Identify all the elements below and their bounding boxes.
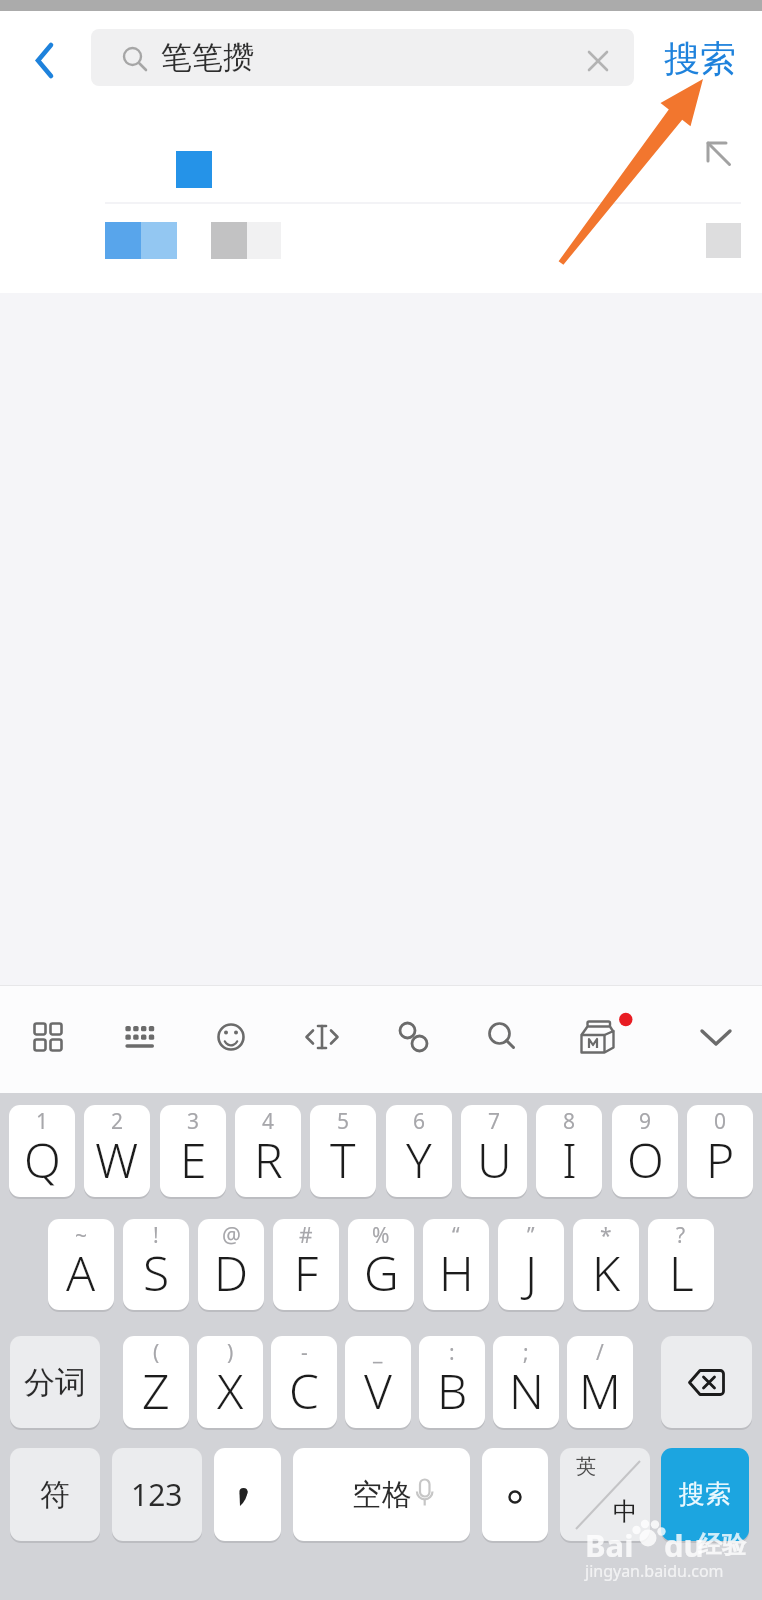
button[interactable]: “ <box>423 1219 489 1310</box>
staticText: Bai <box>585 1524 634 1566</box>
button[interactable]: / <box>567 1336 633 1428</box>
button[interactable]: ” <box>498 1219 564 1310</box>
button[interactable]: 7 <box>461 1105 527 1197</box>
staticText: D <box>214 1240 249 1305</box>
staticText: 8 <box>563 1107 576 1136</box>
staticText: 经验 <box>698 1530 746 1560</box>
button[interactable]: * <box>573 1219 639 1310</box>
staticText: F <box>294 1240 319 1305</box>
button[interactable]: % <box>348 1219 414 1310</box>
button[interactable] <box>214 1448 281 1541</box>
button[interactable] <box>564 1005 632 1069</box>
staticText: ! <box>153 1221 159 1250</box>
staticText: 搜索 <box>679 1478 731 1511</box>
button[interactable]: 4 <box>235 1105 301 1197</box>
staticText: 6 <box>413 1107 426 1136</box>
staticText: K <box>592 1240 621 1305</box>
button[interactable]: 笔笔攒 <box>91 29 634 86</box>
staticText: V <box>364 1358 392 1423</box>
staticText: J <box>525 1240 538 1305</box>
button[interactable]: 9 <box>612 1105 678 1197</box>
button[interactable]: @ <box>198 1219 264 1310</box>
staticText: A <box>66 1240 96 1305</box>
staticText: du <box>664 1524 704 1566</box>
button[interactable] <box>14 1005 82 1069</box>
button[interactable]: 搜索 <box>658 32 742 84</box>
button[interactable]: 8 <box>536 1105 602 1197</box>
button[interactable]: 分词 <box>10 1336 100 1428</box>
staticText: 5 <box>337 1107 350 1136</box>
staticText: ) <box>227 1338 234 1367</box>
button[interactable]: 2 <box>84 1105 150 1197</box>
button[interactable] <box>682 1005 750 1069</box>
button[interactable]: 3 <box>160 1105 226 1197</box>
button[interactable]: _ <box>345 1336 411 1428</box>
button[interactable]: # <box>273 1219 339 1310</box>
staticText: 4 <box>262 1107 275 1136</box>
staticText: 搜索 <box>664 36 736 81</box>
button[interactable]: - <box>271 1336 337 1428</box>
button[interactable]: 符 <box>10 1448 100 1541</box>
staticText: 9 <box>639 1107 652 1136</box>
staticText: 中 <box>613 1496 638 1527</box>
staticText: C <box>289 1358 319 1423</box>
staticText: L <box>669 1240 694 1305</box>
button[interactable]: 6 <box>386 1105 452 1197</box>
staticText: ? <box>676 1221 686 1250</box>
staticText: _ <box>373 1338 383 1367</box>
button[interactable]: ; <box>493 1336 559 1428</box>
button[interactable] <box>197 1005 265 1069</box>
staticText: P <box>706 1127 735 1192</box>
staticText: # <box>299 1221 313 1250</box>
staticText: U <box>477 1127 512 1192</box>
staticText: 1 <box>36 1107 49 1136</box>
staticText: 分词 <box>24 1363 86 1402</box>
staticText: I <box>562 1127 577 1192</box>
staticText: 123 <box>131 1474 183 1515</box>
button[interactable] <box>469 1005 537 1069</box>
button[interactable]: 1 <box>9 1105 75 1197</box>
button[interactable] <box>661 1336 752 1428</box>
button[interactable] <box>379 1005 447 1069</box>
staticText: 2 <box>111 1107 124 1136</box>
staticText: Z <box>142 1358 170 1423</box>
staticText: - <box>301 1338 308 1367</box>
button[interactable]: ( <box>123 1336 189 1428</box>
staticText: N <box>509 1358 544 1423</box>
staticText: / <box>596 1338 604 1367</box>
button[interactable] <box>24 36 68 86</box>
button[interactable] <box>288 1005 356 1069</box>
staticText: 空格 <box>352 1476 412 1514</box>
staticText: ( <box>153 1338 160 1367</box>
staticText: 笔笔攒 <box>161 38 254 77</box>
button[interactable]: ! <box>123 1219 189 1310</box>
button[interactable]: 123 <box>112 1448 202 1541</box>
staticText: B <box>437 1358 468 1423</box>
button[interactable]: 空格 <box>293 1448 470 1541</box>
staticText: R <box>254 1127 283 1192</box>
staticText: * <box>600 1221 612 1250</box>
staticText: 0 <box>714 1107 727 1136</box>
staticText: “ <box>452 1221 460 1250</box>
button[interactable]: 0 <box>687 1105 753 1197</box>
staticText: S <box>143 1240 170 1305</box>
button[interactable]: : <box>419 1336 485 1428</box>
button[interactable]: ? <box>648 1219 714 1310</box>
button[interactable]: 搜索 <box>661 1448 749 1541</box>
staticText: @ <box>222 1221 241 1250</box>
staticText: 英 <box>576 1454 596 1479</box>
button[interactable]: ) <box>197 1336 263 1428</box>
staticText: H <box>439 1240 474 1305</box>
staticText: ” <box>527 1221 535 1250</box>
staticText: 符 <box>40 1476 70 1514</box>
button[interactable]: 5 <box>310 1105 376 1197</box>
button[interactable]: ~ <box>48 1219 114 1310</box>
staticText: ; <box>523 1338 529 1367</box>
staticText: Y <box>406 1127 432 1192</box>
button[interactable] <box>106 1005 174 1069</box>
staticText: % <box>372 1221 390 1250</box>
button[interactable] <box>482 1448 548 1541</box>
staticText: T <box>330 1127 356 1192</box>
button[interactable]: 英 <box>560 1448 650 1541</box>
staticText: : <box>449 1338 455 1367</box>
